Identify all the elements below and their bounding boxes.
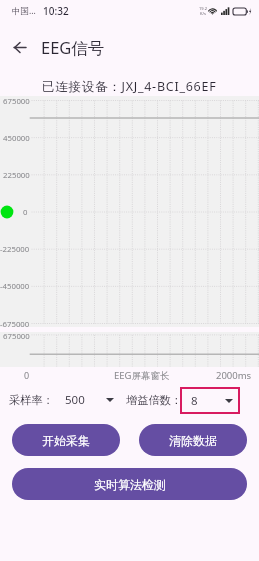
staticText: 2000ms — [216, 369, 252, 382]
staticText: -225000 — [0, 244, 30, 255]
staticText: 675000 — [3, 96, 30, 107]
staticText: EEG信号 — [41, 36, 105, 59]
staticText: EEG屏幕窗长 — [114, 369, 170, 382]
staticText: 0 — [24, 369, 30, 381]
staticText: 清除数据 — [169, 433, 217, 448]
button[interactable]: 500 — [60, 387, 118, 413]
staticText: 0 — [23, 207, 28, 218]
staticText: 中国... — [12, 5, 36, 17]
button[interactable]: 清除数据 — [139, 424, 247, 456]
staticText: 增益倍数： — [126, 393, 182, 407]
staticText: 19.2 — [199, 6, 207, 11]
staticText: 采样率： — [9, 393, 54, 407]
staticText: -675000 — [0, 319, 30, 330]
staticText: K/s — [200, 11, 206, 16]
staticText: -450000 — [0, 281, 30, 292]
button[interactable]: 开始采集 — [12, 424, 120, 456]
staticText: 实时算法检测 — [94, 477, 166, 492]
staticText: 225000 — [3, 170, 30, 181]
staticText: 8 — [191, 393, 198, 409]
staticText: 675000 — [3, 331, 30, 342]
button[interactable]: Back — [6, 29, 33, 65]
button[interactable]: 8 — [180, 387, 240, 414]
staticText: 10:32 — [43, 4, 69, 18]
staticText: 500 — [65, 392, 85, 408]
staticText: 450000 — [3, 133, 30, 144]
button[interactable]: 实时算法检测 — [12, 468, 247, 500]
staticText: 已连接设备：JXJ_4-BCI_66EF — [42, 78, 217, 95]
staticText: 开始采集 — [42, 433, 90, 448]
